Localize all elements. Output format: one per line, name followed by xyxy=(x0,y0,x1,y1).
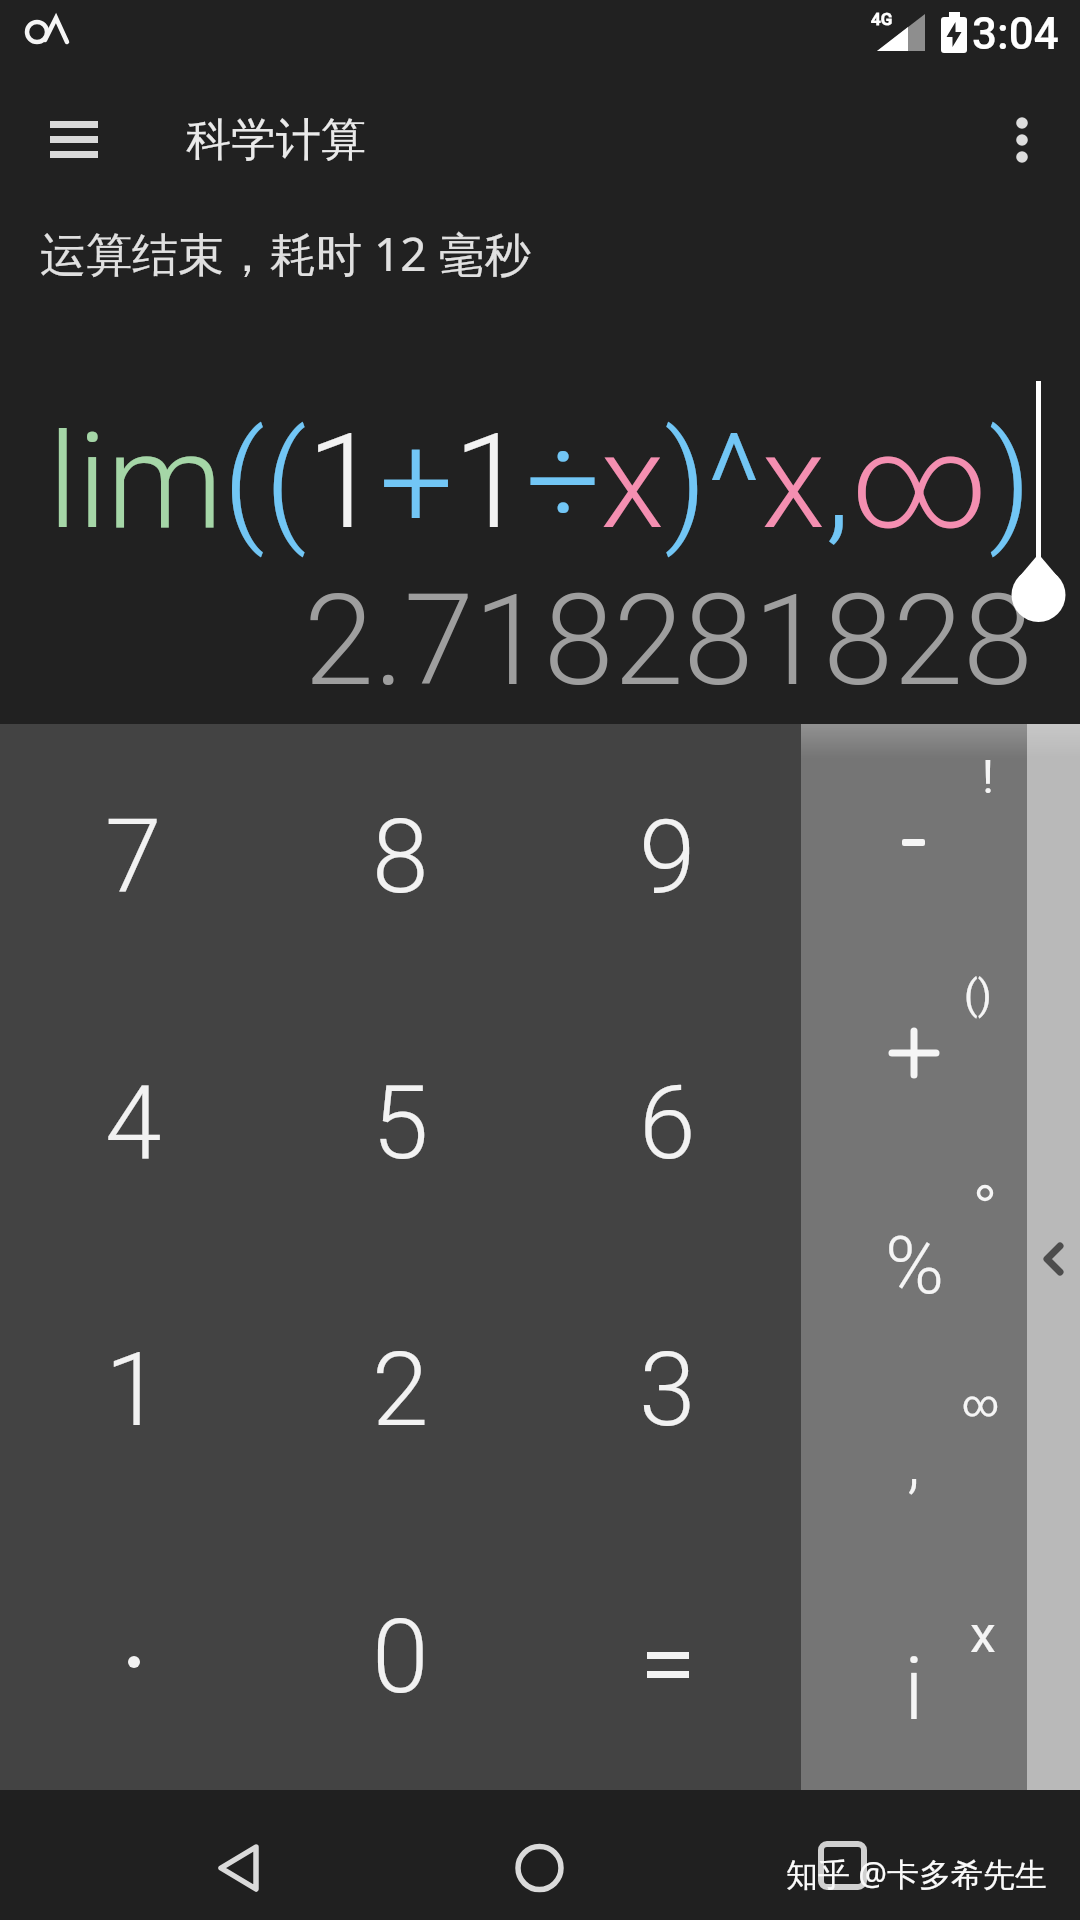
staticText: 9 xyxy=(639,797,696,917)
staticText: % xyxy=(885,1219,945,1313)
button[interactable] xyxy=(801,1576,1027,1789)
button[interactable]: 2 xyxy=(267,1256,534,1523)
button[interactable]: 5 xyxy=(267,990,534,1256)
staticText: x xyxy=(970,1604,996,1665)
staticText: lim((1+1÷x)^x,∞) xyxy=(48,405,1032,559)
staticText: 7 xyxy=(105,797,162,917)
staticText: , xyxy=(907,1422,921,1502)
button[interactable] xyxy=(785,1800,900,1910)
staticText: 3:04 xyxy=(972,8,1059,60)
staticText: () xyxy=(964,972,992,1019)
button[interactable] xyxy=(180,1800,295,1910)
button[interactable] xyxy=(534,1523,801,1790)
staticText: 4G xyxy=(871,9,893,29)
staticText: 3 xyxy=(639,1330,696,1450)
staticText: ∞ xyxy=(962,1383,1000,1425)
button[interactable]: 6 xyxy=(534,990,801,1256)
staticText: 8 xyxy=(372,797,429,917)
button[interactable]: 9 xyxy=(534,724,801,990)
staticText: 4 xyxy=(105,1063,162,1183)
staticText: 0 xyxy=(372,1597,429,1717)
button[interactable]: 4 xyxy=(0,990,267,1256)
button[interactable] xyxy=(1027,1204,1080,1314)
staticText: 5 xyxy=(372,1063,429,1183)
button[interactable]: 3 xyxy=(534,1256,801,1523)
staticText: 2 xyxy=(372,1330,429,1450)
button[interactable] xyxy=(801,1363,1027,1576)
button[interactable] xyxy=(1027,724,1080,1790)
button[interactable] xyxy=(482,1800,597,1910)
staticText: 知乎 @卡多希先生 xyxy=(786,1852,1048,1896)
button[interactable] xyxy=(801,724,1027,937)
button[interactable] xyxy=(32,105,116,175)
button[interactable] xyxy=(0,1523,267,1790)
button[interactable]: 0 xyxy=(267,1523,534,1790)
button[interactable] xyxy=(801,937,1027,1150)
button[interactable]: 1 xyxy=(0,1256,267,1523)
staticText: 6 xyxy=(639,1063,696,1183)
staticText: i xyxy=(904,1637,924,1740)
button[interactable] xyxy=(990,105,1056,175)
button[interactable] xyxy=(801,1150,1027,1363)
staticText: 1 xyxy=(105,1330,162,1450)
button[interactable]: 8 xyxy=(267,724,534,990)
staticText: 2.718281828 xyxy=(304,567,1033,715)
staticText: ! xyxy=(982,750,994,804)
button[interactable]: 7 xyxy=(0,724,267,990)
staticText: 科学计算 xyxy=(186,112,366,169)
staticText: 运算结束，耗时 12 毫秒 xyxy=(40,222,531,285)
